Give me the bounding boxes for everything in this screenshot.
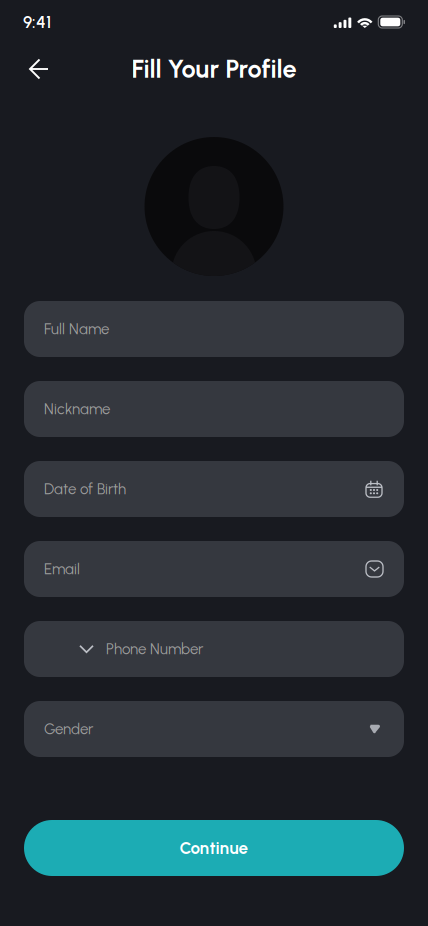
staticText: Full Name	[44, 320, 109, 338]
staticText: Gender	[44, 720, 93, 738]
staticText: Date of Birth	[44, 480, 126, 498]
button[interactable]: Email	[24, 541, 404, 597]
button[interactable]: Back	[19, 48, 59, 89]
button[interactable]: Date of Birth	[24, 461, 404, 517]
button[interactable]: Continue	[24, 820, 404, 876]
staticText: Fill Your Profile	[131, 54, 296, 84]
button[interactable]: Gender	[24, 701, 404, 757]
button[interactable]: Change profile photo	[144, 137, 283, 276]
button[interactable]: Nickname	[24, 381, 404, 437]
staticText: Email	[44, 560, 80, 578]
staticText: Phone Number	[106, 640, 203, 658]
button[interactable]: Full Name	[24, 301, 404, 357]
staticText: Continue	[179, 838, 248, 858]
staticText: 9:41	[23, 12, 51, 32]
button[interactable]: Phone Number	[24, 621, 404, 677]
staticText: Nickname	[44, 400, 110, 418]
